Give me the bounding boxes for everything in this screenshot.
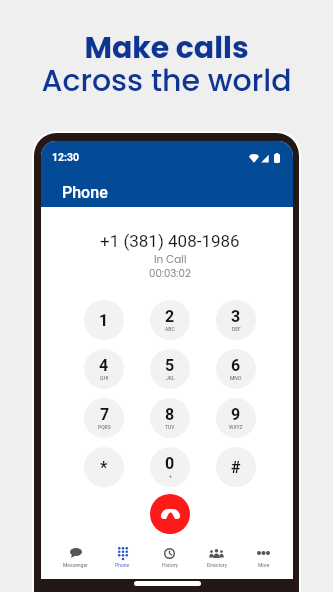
button[interactable]: More — [240, 544, 287, 568]
button[interactable]: 5 — [150, 349, 190, 389]
staticText: WXYZ — [229, 424, 243, 430]
staticText: 9 — [231, 405, 241, 424]
staticText: Phone — [115, 562, 130, 568]
staticText: + — [169, 473, 172, 479]
staticText: In Call — [154, 252, 187, 267]
button[interactable]: Messenger — [52, 544, 99, 568]
staticText: 0 — [165, 454, 175, 473]
button[interactable]: 7 — [84, 398, 124, 438]
staticText: Across the world — [41, 60, 292, 102]
staticText: 2 — [165, 307, 175, 326]
staticText: * — [100, 458, 108, 477]
button[interactable]: End call — [150, 494, 190, 534]
button[interactable]: 6 — [216, 349, 256, 389]
staticText: 00:03:02 — [149, 266, 191, 280]
button[interactable]: History — [146, 544, 193, 568]
staticText: More — [258, 562, 270, 568]
staticText: ABC — [165, 326, 175, 332]
staticText: JKL — [166, 375, 175, 381]
staticText: Phone — [62, 183, 108, 202]
staticText: Messenger — [63, 562, 88, 568]
button[interactable]: 1 — [84, 300, 124, 340]
button[interactable]: Phone — [99, 544, 146, 568]
button[interactable]: # — [216, 447, 256, 487]
staticText: +1 (381) 408-1986 — [100, 231, 240, 251]
staticText: 12:30 — [52, 151, 80, 163]
staticText: History — [162, 562, 178, 568]
staticText: 8 — [165, 405, 175, 424]
button[interactable]: Directory — [193, 544, 240, 568]
button[interactable]: 0 — [150, 447, 190, 487]
staticText: GHI — [100, 375, 109, 381]
button[interactable]: * — [84, 447, 124, 487]
staticText: 5 — [165, 356, 175, 375]
staticText: Directory — [207, 562, 227, 568]
staticText: 4 — [99, 356, 109, 375]
staticText: TUV — [165, 424, 175, 430]
button[interactable]: 3 — [216, 300, 256, 340]
button[interactable]: 4 — [84, 349, 124, 389]
staticText: MNO — [230, 375, 242, 381]
button[interactable]: 2 — [150, 300, 190, 340]
staticText: DEF — [232, 326, 241, 332]
button[interactable]: 9 — [216, 398, 256, 438]
staticText: 7 — [100, 405, 110, 424]
button[interactable]: 8 — [150, 398, 190, 438]
staticText: # — [231, 458, 241, 477]
staticText: 1 — [99, 311, 109, 330]
staticText: PQRS — [98, 424, 111, 430]
staticText: Make calls — [84, 27, 249, 69]
staticText: 3 — [231, 307, 241, 326]
staticText: 6 — [231, 356, 241, 375]
